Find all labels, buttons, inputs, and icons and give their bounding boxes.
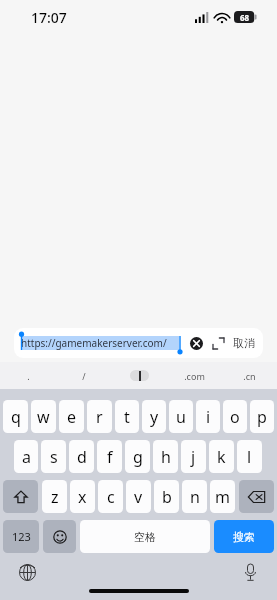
button[interactable]: .com	[167, 362, 222, 389]
staticText: b	[162, 486, 172, 508]
button[interactable]: 搜索	[214, 520, 274, 553]
staticText: /	[82, 370, 86, 382]
staticText: n	[190, 486, 200, 508]
staticText: l	[247, 446, 252, 468]
button[interactable]: .cn	[222, 362, 277, 389]
button[interactable]: z	[42, 480, 67, 513]
button[interactable]: n	[182, 480, 207, 513]
staticText: p	[257, 406, 267, 428]
button[interactable]: e	[59, 400, 84, 433]
staticText: x	[78, 486, 87, 508]
button[interactable]: /	[56, 362, 112, 389]
staticText: https://gamemakerserver.com/	[21, 336, 167, 350]
button[interactable]: v	[126, 480, 151, 513]
staticText: 17:07	[31, 8, 67, 27]
button[interactable]: Shift	[3, 480, 38, 513]
staticText: a	[22, 446, 31, 468]
staticText: v	[134, 486, 143, 508]
staticText: s	[50, 446, 58, 468]
button[interactable]: 取消	[232, 336, 256, 350]
staticText: .com	[184, 370, 205, 382]
staticText: h	[161, 446, 171, 468]
button[interactable]: i	[196, 400, 220, 433]
staticText: 搜索	[233, 530, 255, 544]
staticText: y	[150, 406, 159, 428]
staticText: i	[206, 406, 211, 428]
staticText: 123	[12, 529, 31, 544]
button[interactable]: p	[250, 400, 274, 433]
staticText: o	[230, 406, 240, 428]
button[interactable]: j	[181, 440, 206, 473]
button[interactable]: d	[69, 440, 94, 473]
button[interactable]: m	[210, 480, 235, 513]
staticText: 取消	[233, 336, 255, 350]
button[interactable]: Clear text	[187, 334, 205, 352]
button[interactable]: Backspace	[239, 480, 274, 513]
button[interactable]: o	[223, 400, 247, 433]
button[interactable]: g	[125, 440, 150, 473]
staticText: q	[11, 406, 21, 428]
button[interactable]: Emoji	[43, 520, 76, 553]
button[interactable]: q	[3, 400, 28, 433]
button[interactable]: 123	[3, 520, 39, 553]
button[interactable]: u	[169, 400, 193, 433]
button[interactable]: Paste	[112, 370, 167, 381]
button[interactable]: Dictation	[239, 561, 261, 583]
staticText: f	[107, 446, 113, 468]
button[interactable]: c	[98, 480, 123, 513]
button[interactable]: l	[237, 440, 262, 473]
staticText: 68	[240, 12, 250, 23]
staticText: g	[133, 446, 143, 468]
staticText: r	[96, 406, 103, 428]
button[interactable]: f	[97, 440, 122, 473]
staticText: .cn	[243, 370, 256, 382]
button[interactable]: https://gamemakerserver.com/	[14, 328, 263, 358]
button[interactable]: r	[87, 400, 112, 433]
button[interactable]: b	[154, 480, 179, 513]
button[interactable]: k	[209, 440, 234, 473]
staticText: j	[191, 446, 196, 468]
staticText: c	[107, 486, 115, 508]
button[interactable]: y	[142, 400, 166, 433]
staticText: .	[27, 370, 30, 382]
button[interactable]: w	[31, 400, 56, 433]
button[interactable]: .	[0, 362, 56, 389]
button[interactable]: t	[115, 400, 139, 433]
staticText: d	[77, 446, 87, 468]
button[interactable]: x	[70, 480, 95, 513]
staticText: 空格	[134, 530, 156, 544]
staticText: t	[124, 406, 130, 428]
staticText: m	[215, 486, 230, 508]
staticText: e	[67, 406, 77, 428]
button[interactable]: Expand	[209, 334, 227, 352]
staticText: k	[217, 446, 226, 468]
button[interactable]: s	[41, 440, 66, 473]
button[interactable]: 空格	[80, 520, 210, 553]
button[interactable]: Switch keyboard language	[16, 561, 38, 583]
button[interactable]: h	[153, 440, 178, 473]
staticText: w	[37, 406, 50, 428]
staticText: z	[51, 486, 59, 508]
button[interactable]: a	[14, 440, 38, 473]
staticText: u	[176, 406, 186, 428]
